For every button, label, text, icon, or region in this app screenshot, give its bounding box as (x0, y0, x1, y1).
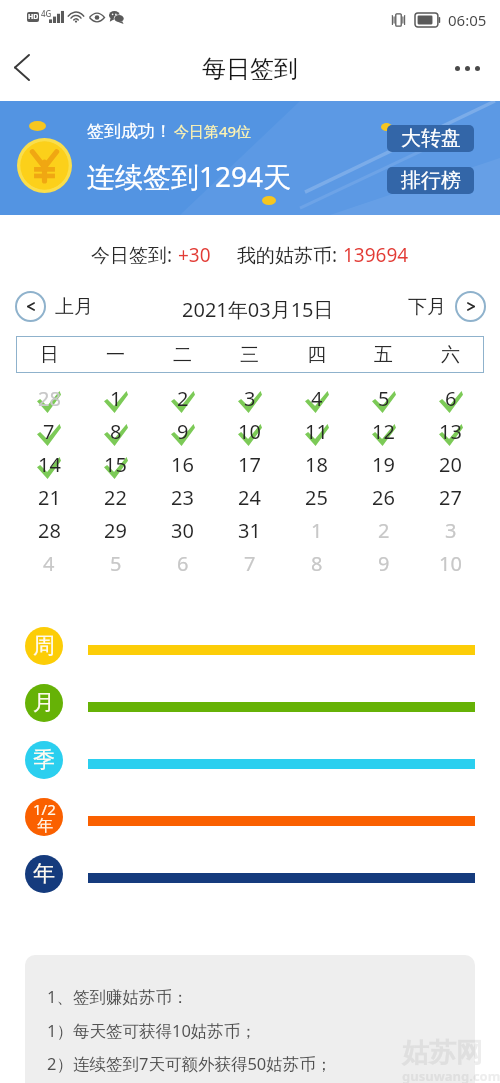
staticText: 22 (104, 484, 127, 511)
staticText: 12 (372, 418, 395, 445)
staticText: 季 (33, 746, 55, 774)
staticText: 15 (104, 451, 127, 478)
staticText: 06:05 (448, 10, 487, 30)
staticText: 10 (439, 550, 462, 577)
staticText: 27 (439, 484, 462, 511)
staticText: 4G (41, 8, 52, 19)
staticText: 三 (240, 343, 259, 367)
staticText: 7 (43, 418, 55, 445)
staticText: 年 (33, 860, 55, 888)
button[interactable]: 1/2 (25, 798, 63, 836)
staticText: 4 (43, 550, 55, 577)
staticText: HD (28, 12, 39, 22)
staticText: 7 (244, 550, 256, 577)
staticText: 周 (33, 632, 55, 660)
staticText: 今日第49位 (174, 121, 252, 141)
staticText: 1）每天签可获得10姑苏币； (47, 1019, 257, 1042)
staticText: 30 (171, 517, 194, 544)
staticText: 9 (177, 418, 189, 445)
staticText: 10 (238, 418, 261, 445)
staticText: 排行榜 (401, 168, 461, 193)
staticText: 24 (238, 484, 261, 511)
staticText: 年 (37, 816, 53, 834)
staticText: 4 (311, 385, 323, 412)
staticText: 139694 (343, 242, 409, 268)
staticText: 13 (439, 418, 462, 445)
staticText: 28 (38, 385, 61, 412)
button[interactable]: 下月 (408, 291, 486, 322)
staticText: 我的姑苏币: (237, 242, 343, 268)
staticText: 26 (372, 484, 395, 511)
staticText: +30 (178, 242, 211, 268)
staticText: 二 (173, 343, 192, 367)
button[interactable]: 季 (25, 741, 63, 779)
button[interactable]: More options (443, 44, 491, 92)
staticText: 四 (307, 343, 326, 367)
staticText: 2021年03月15日 (182, 296, 334, 323)
staticText: 18 (305, 451, 328, 478)
staticText: 2）连续签到7天可额外获得50姑苏币； (47, 1052, 333, 1075)
staticText: 3 (244, 385, 256, 412)
staticText: 大转盘 (401, 126, 461, 151)
staticText: 1、签到赚姑苏币： (47, 985, 189, 1008)
button[interactable]: 年 (25, 855, 63, 893)
staticText: 8 (110, 418, 122, 445)
staticText: 一 (106, 343, 125, 367)
staticText: 2 (177, 385, 189, 412)
staticText: 6 (445, 385, 457, 412)
staticText: 连续签到1294天 (87, 157, 292, 195)
staticText: 9 (378, 550, 390, 577)
staticText: 1/2 (33, 799, 56, 819)
staticText: 月 (33, 689, 55, 717)
staticText: 21 (38, 484, 61, 511)
staticText: gusuwang.com (402, 1067, 500, 1083)
staticText: 5 (110, 550, 122, 577)
staticText: 日 (40, 343, 59, 367)
staticText: 25 (305, 484, 328, 511)
staticText: 1 (110, 385, 122, 412)
button[interactable]: 周 (25, 627, 63, 665)
button[interactable]: 大转盘 (387, 125, 474, 152)
other: Previous month (15, 291, 46, 322)
staticText: 2 (378, 517, 390, 544)
staticText: 五 (374, 343, 393, 367)
staticText: 每日签到 (202, 54, 298, 84)
staticText: 今日签到: (91, 242, 178, 268)
staticText: 14 (38, 451, 61, 478)
staticText: 签到成功！ (87, 121, 172, 142)
staticText: 16 (171, 451, 194, 478)
staticText: 3 (445, 517, 457, 544)
button[interactable]: 月 (25, 684, 63, 722)
button[interactable]: 排行榜 (387, 167, 474, 194)
staticText: 下月 (408, 295, 446, 319)
staticText: 6 (177, 550, 189, 577)
staticText: 1 (311, 517, 323, 544)
staticText: 20 (439, 451, 462, 478)
staticText: 六 (441, 343, 460, 367)
staticText: 11 (305, 418, 328, 445)
staticText: 29 (104, 517, 127, 544)
other: Next month (455, 291, 486, 322)
staticText: 5 (378, 385, 390, 412)
staticText: 28 (38, 517, 61, 544)
staticText: 31 (238, 517, 261, 544)
staticText: 姑苏网 (402, 1036, 483, 1070)
button[interactable]: Previous month (15, 291, 93, 322)
staticText: 17 (238, 451, 261, 478)
staticText: 23 (171, 484, 194, 511)
button[interactable]: Back (0, 43, 44, 91)
staticText: 19 (372, 451, 395, 478)
staticText: 8 (311, 550, 323, 577)
staticText: 上月 (55, 295, 93, 319)
